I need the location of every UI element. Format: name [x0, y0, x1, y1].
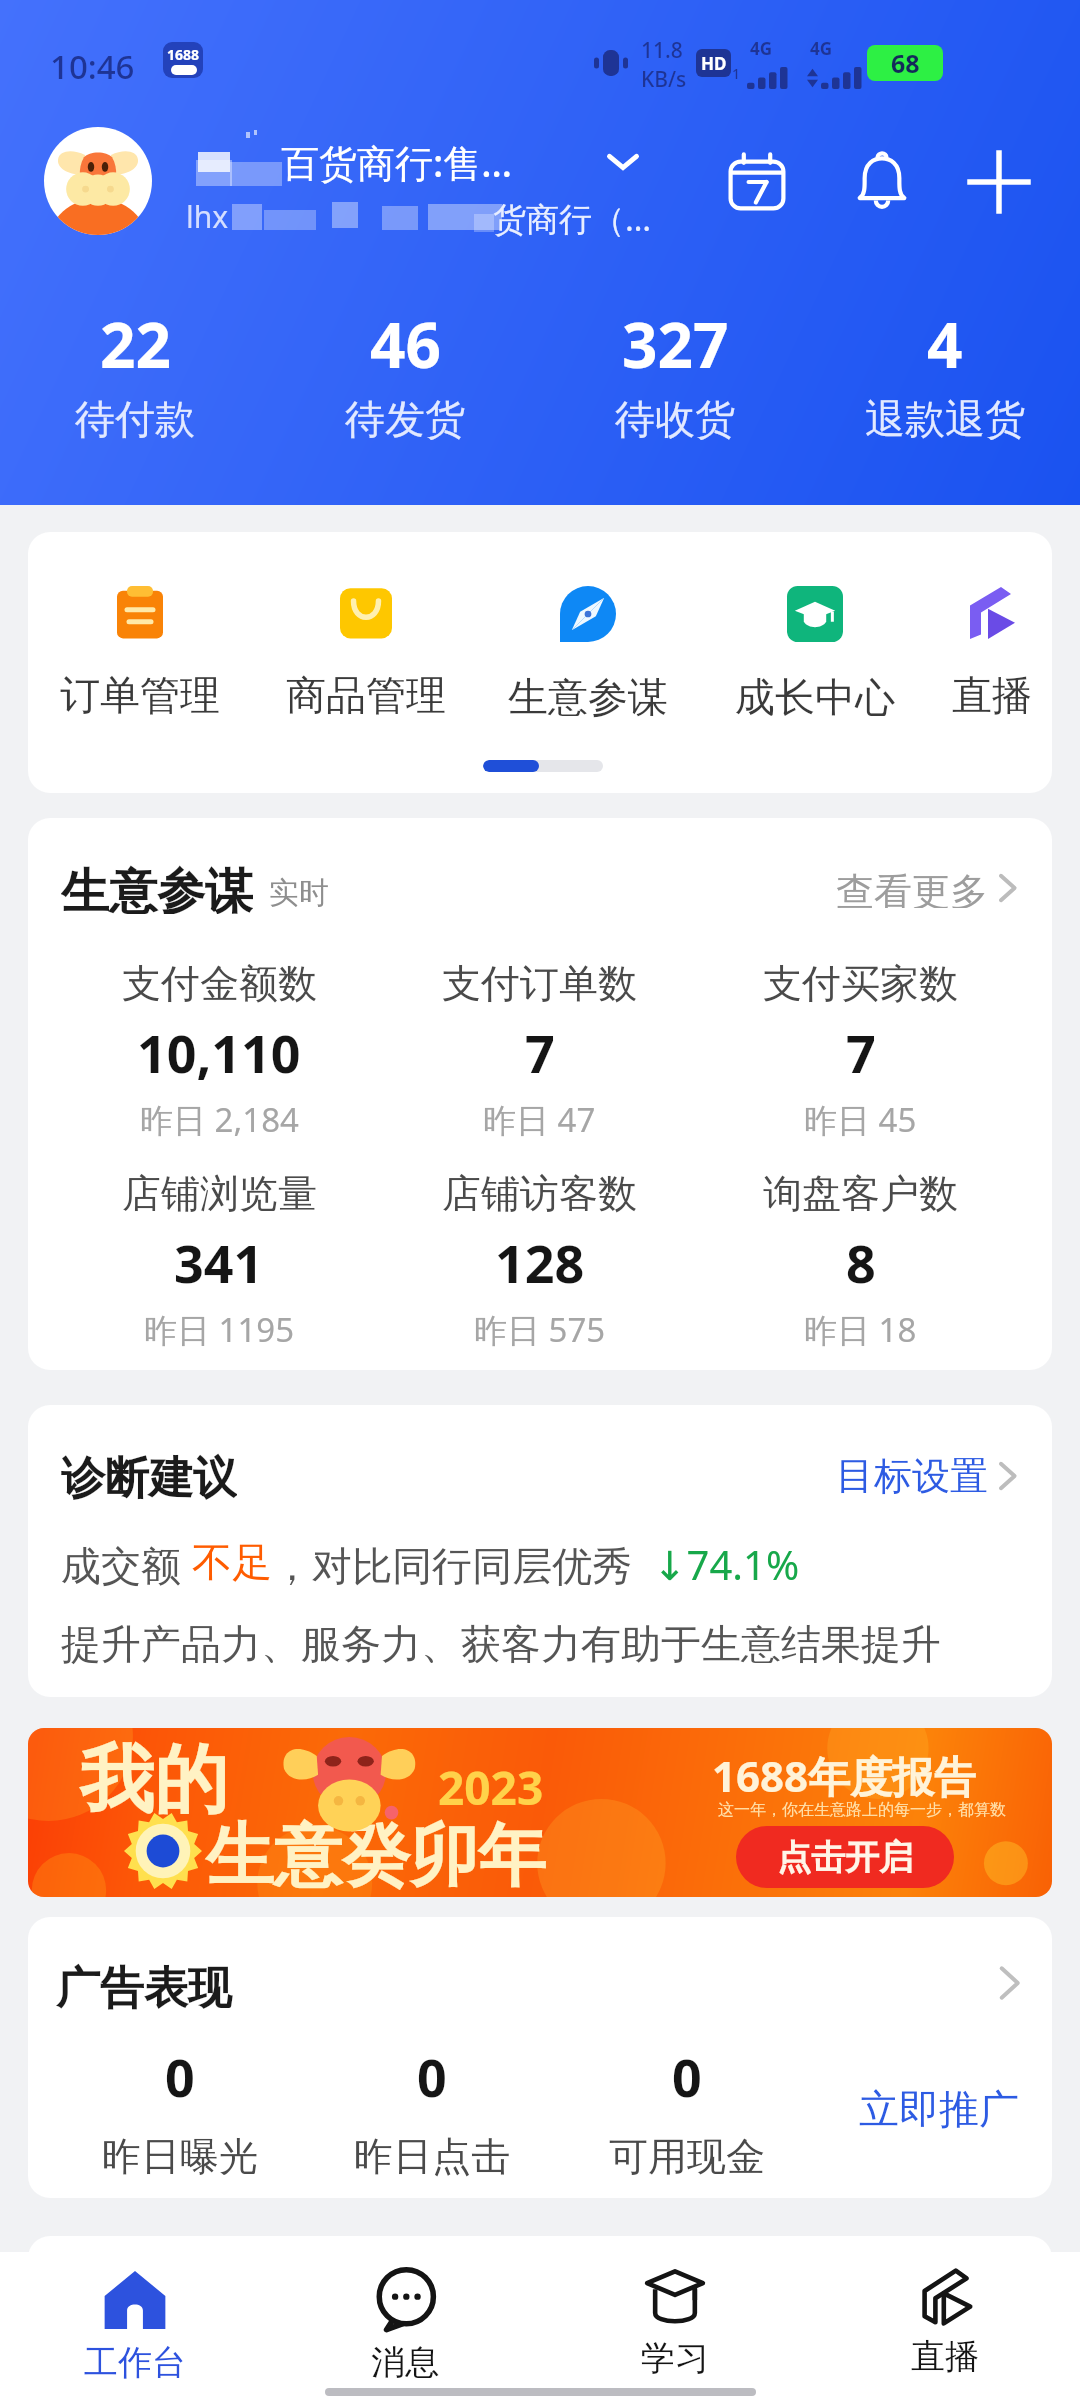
staticText: HD	[701, 52, 727, 75]
staticText: 实时	[269, 874, 329, 912]
staticText: 目标设置	[836, 1452, 988, 1500]
staticText: 生意参谋	[508, 672, 668, 722]
staticText: 11.8	[641, 36, 683, 65]
button[interactable]: 支付金额数	[59, 959, 379, 1142]
staticText: 直播	[911, 2335, 979, 2378]
staticText: 商品管理	[286, 670, 446, 720]
staticText: 支付买家数	[763, 959, 958, 1008]
staticText: 百货商行:售…	[281, 136, 513, 188]
staticText: 待发货	[345, 394, 465, 444]
staticText: 店铺访客数	[442, 1169, 637, 1218]
staticText: 消息	[371, 2341, 439, 2384]
button[interactable]: 查看更多	[836, 862, 1019, 914]
staticText: KB/s	[641, 65, 687, 90]
staticText: 这一年，你在生意路上的每一步，都算数	[718, 1800, 1006, 1820]
staticText: 订单管理	[60, 670, 220, 720]
button[interactable]: Shop avatar	[44, 127, 152, 235]
button[interactable]: 0	[322, 2041, 542, 2181]
staticText: 提升产品力、服务力、获客力有助于生意结果提升	[61, 1619, 941, 1669]
button[interactable]: 直播	[810, 2267, 1080, 2378]
button[interactable]: 我的	[28, 1728, 1052, 1897]
button[interactable]: Add	[960, 143, 1038, 221]
staticText: 341	[174, 1227, 264, 1298]
staticText: 22	[100, 302, 171, 386]
staticText: 诊断建议	[61, 1451, 237, 1501]
staticText: 68	[891, 46, 920, 80]
staticText: 点击开启	[777, 1836, 913, 1879]
staticText: 昨日 2,184	[140, 1097, 299, 1142]
button[interactable]: 支付订单数	[379, 959, 700, 1142]
staticText: 0	[672, 2041, 702, 2112]
staticText: 327	[622, 302, 729, 386]
staticText: 4G	[810, 37, 833, 60]
button[interactable]: 学习	[540, 2267, 810, 2380]
staticText: 不足	[192, 1537, 272, 1587]
staticText: 4	[927, 302, 963, 386]
staticText: 8	[846, 1227, 876, 1298]
button[interactable]: 4	[810, 302, 1080, 444]
button[interactable]: Switch shop	[592, 138, 654, 186]
staticText: 46	[370, 302, 441, 386]
staticText: 成交额	[61, 1537, 192, 1587]
button[interactable]: 成长中心	[715, 586, 915, 722]
button[interactable]: 工作台	[0, 2267, 270, 2384]
button[interactable]: 店铺浏览量	[59, 1169, 379, 1352]
button[interactable]: 22	[0, 302, 270, 444]
staticText: 1688	[167, 45, 200, 64]
button[interactable]: 询盘客户数	[700, 1169, 1021, 1352]
staticText: 7	[846, 1017, 876, 1088]
staticText: 2023	[438, 1756, 544, 1819]
staticText: 询盘客户数	[763, 1169, 958, 1218]
button[interactable]: 0	[70, 2041, 290, 2181]
staticText: 支付金额数	[122, 959, 317, 1008]
button[interactable]: 327	[540, 302, 810, 444]
staticText: lhx	[186, 196, 229, 237]
staticText: 0	[165, 2041, 195, 2112]
staticText: 昨日 47	[483, 1097, 596, 1142]
button[interactable]: 目标设置	[836, 1452, 1019, 1500]
staticText: 昨日 45	[804, 1097, 917, 1142]
staticText: 昨日 575	[474, 1307, 606, 1352]
staticText: 4G	[750, 37, 773, 60]
button[interactable]: 0	[577, 2041, 797, 2181]
staticText: 成长中心	[735, 672, 895, 722]
staticText: ↓74.1%	[653, 1537, 800, 1587]
staticText: 广告表现	[56, 1961, 232, 2016]
staticText: 10:46	[50, 44, 135, 89]
staticText: 退款退货	[865, 394, 1025, 444]
button[interactable]: 46	[270, 302, 540, 444]
staticText: 昨日点击	[354, 2132, 510, 2181]
staticText: 1688年度报告	[712, 1747, 977, 1804]
staticText: 查看更多	[836, 868, 988, 908]
button[interactable]: More ad stats	[980, 1953, 1040, 2013]
button[interactable]: 立即推广	[848, 2079, 1030, 2139]
staticText: 工作台	[84, 2341, 186, 2384]
staticText: 生意参谋	[61, 862, 253, 914]
staticText: 待收货	[615, 394, 735, 444]
staticText: 待付款	[75, 394, 195, 444]
staticText: 生意癸卯年	[206, 1814, 546, 1897]
staticText: 0	[417, 2041, 447, 2112]
staticText: 10,110	[137, 1017, 301, 1088]
button[interactable]: 订单管理	[40, 586, 240, 720]
staticText: 直播	[952, 670, 1032, 720]
button[interactable]: 店铺访客数	[379, 1169, 700, 1352]
button[interactable]: Notifications	[843, 143, 921, 221]
button[interactable]: Calendar	[718, 143, 796, 221]
staticText: 支付订单数	[442, 959, 637, 1008]
button[interactable]: 消息	[270, 2267, 540, 2384]
staticText: 学习	[641, 2337, 709, 2380]
staticText: 昨日曝光	[102, 2132, 258, 2181]
staticText: 可用现金	[609, 2132, 765, 2181]
staticText: 店铺浏览量	[122, 1169, 317, 1218]
staticText: 昨日 18	[804, 1307, 917, 1352]
staticText: 立即推广	[859, 2084, 1019, 2134]
staticText: 我的	[80, 1734, 228, 1827]
button[interactable]: 生意参谋	[488, 586, 688, 722]
button[interactable]: 直播	[892, 586, 1052, 720]
staticText: 7	[525, 1017, 555, 1088]
staticText: 昨日 1195	[144, 1307, 295, 1352]
button[interactable]: 商品管理	[266, 586, 466, 720]
button[interactable]: 支付买家数	[700, 959, 1021, 1142]
staticText: 1	[732, 64, 741, 83]
